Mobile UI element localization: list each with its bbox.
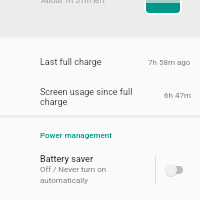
staticText: 6h 47m xyxy=(164,91,191,100)
button[interactable]: Screen usage since full charge xyxy=(0,76,200,114)
button[interactable]: Optimise xyxy=(146,0,180,13)
button[interactable]: Last full charge xyxy=(0,42,200,72)
staticText: 7h 58m ago xyxy=(148,58,191,67)
staticText: About 1h 51m left xyxy=(41,0,105,5)
button[interactable]: Battery saver switch, off xyxy=(158,154,194,186)
staticText: Screen usage since full charge xyxy=(40,87,136,107)
staticText: Battery saver xyxy=(40,154,94,165)
staticText: Power management xyxy=(40,131,112,140)
staticText: Last full charge xyxy=(40,57,102,68)
staticText: Off / Never turn on automatically xyxy=(40,165,112,185)
button[interactable]: Battery saver xyxy=(0,146,155,194)
